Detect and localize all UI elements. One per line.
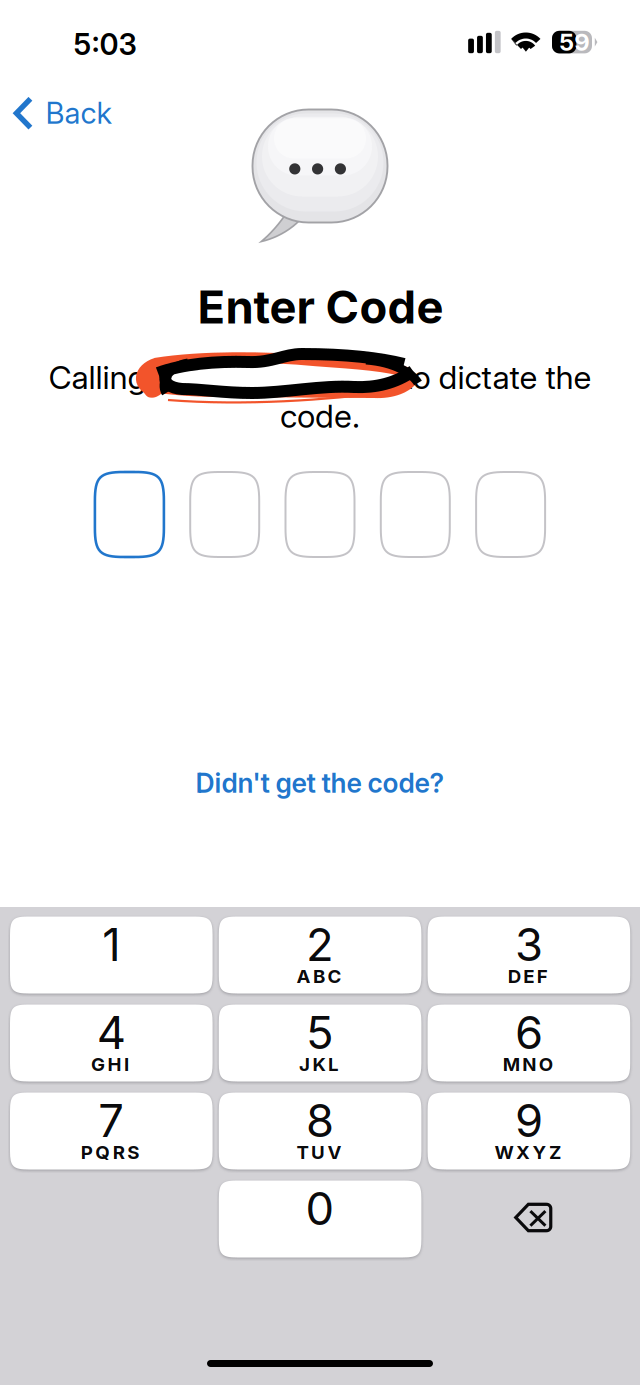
staticText: JKL xyxy=(299,1053,339,1075)
staticText: Calling to dictate the xyxy=(48,358,591,397)
staticText: 2 xyxy=(306,917,334,972)
button[interactable]: 0 xyxy=(219,1180,421,1257)
button[interactable]: 4 xyxy=(10,1004,213,1081)
staticText: 0 xyxy=(306,1181,335,1236)
staticText: Back xyxy=(45,95,112,131)
staticText: 5 xyxy=(306,1005,334,1060)
button[interactable]: 2 xyxy=(219,916,421,993)
staticText: 5:03 xyxy=(73,26,136,62)
staticText: 7 xyxy=(98,1093,124,1148)
staticText: DEF xyxy=(508,965,548,987)
button[interactable]: Didn't get the code? xyxy=(150,759,490,807)
staticText: WXYZ xyxy=(494,1141,561,1163)
staticText: Enter Code xyxy=(197,280,443,334)
button[interactable]: Back xyxy=(0,87,200,139)
button[interactable]: 5 xyxy=(219,1004,421,1081)
staticText: 6 xyxy=(515,1005,543,1060)
button[interactable]: 6 xyxy=(428,1004,630,1081)
staticText: 9 xyxy=(515,1093,543,1148)
staticText: code. xyxy=(280,397,360,435)
button[interactable]: 8 xyxy=(219,1092,421,1169)
staticText: PQRS xyxy=(81,1141,139,1163)
staticText: 59 xyxy=(559,28,589,57)
button[interactable]: 3 xyxy=(428,916,630,993)
staticText: MNO xyxy=(503,1053,553,1075)
staticText: ABC xyxy=(296,965,341,987)
staticText: TUV xyxy=(296,1141,341,1163)
staticText: Didn't get the code? xyxy=(195,767,444,799)
button[interactable]: Delete xyxy=(428,1180,630,1257)
staticText: 4 xyxy=(97,1005,126,1060)
button[interactable]: 7 xyxy=(10,1092,213,1169)
button[interactable]: 1 xyxy=(10,916,213,993)
staticText: GHI xyxy=(91,1053,129,1075)
staticText: 3 xyxy=(515,917,543,972)
staticText: 8 xyxy=(306,1093,334,1148)
staticText: 1 xyxy=(102,917,120,972)
button[interactable]: 9 xyxy=(428,1092,630,1169)
